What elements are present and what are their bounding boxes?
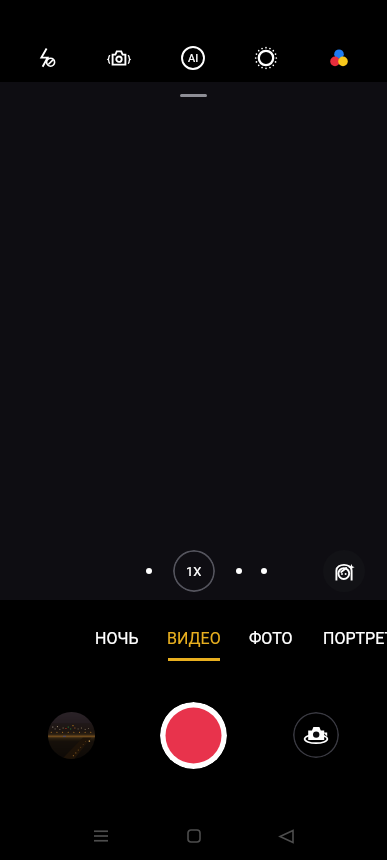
staticText: 1X (186, 564, 202, 579)
button[interactable]: НОЧЬ (71, 629, 163, 669)
button[interactable]: Camera stabilisation (97, 36, 141, 80)
button[interactable]: Home (172, 814, 216, 858)
button[interactable]: Colour filters (317, 36, 361, 80)
button[interactable]: Zoom level (135, 557, 163, 585)
button[interactable]: ПОРТРЕТ (312, 629, 387, 669)
staticText: НОЧЬ (95, 629, 139, 648)
button[interactable]: 1X (173, 550, 215, 592)
staticText: ФОТО (249, 629, 293, 648)
button[interactable]: Back (264, 814, 308, 858)
button[interactable]: Zoom level (225, 557, 253, 585)
button[interactable]: Record video (160, 702, 227, 769)
button[interactable]: ВИДЕО (142, 629, 246, 669)
button[interactable]: ФОТО (225, 629, 317, 669)
button[interactable]: Camera settings (244, 36, 288, 80)
button[interactable]: Switch camera (293, 712, 339, 758)
button[interactable]: Zoom level (250, 557, 278, 585)
button[interactable]: Flash off (24, 36, 68, 80)
button[interactable]: Beauty mode (323, 550, 365, 592)
button[interactable]: AI scene detection (171, 36, 215, 80)
staticText: AI (188, 52, 199, 65)
staticText: ПОРТРЕТ (323, 629, 387, 648)
staticText: ВИДЕО (167, 629, 221, 648)
button[interactable]: Recents (79, 814, 123, 858)
button[interactable]: Gallery (48, 712, 95, 759)
